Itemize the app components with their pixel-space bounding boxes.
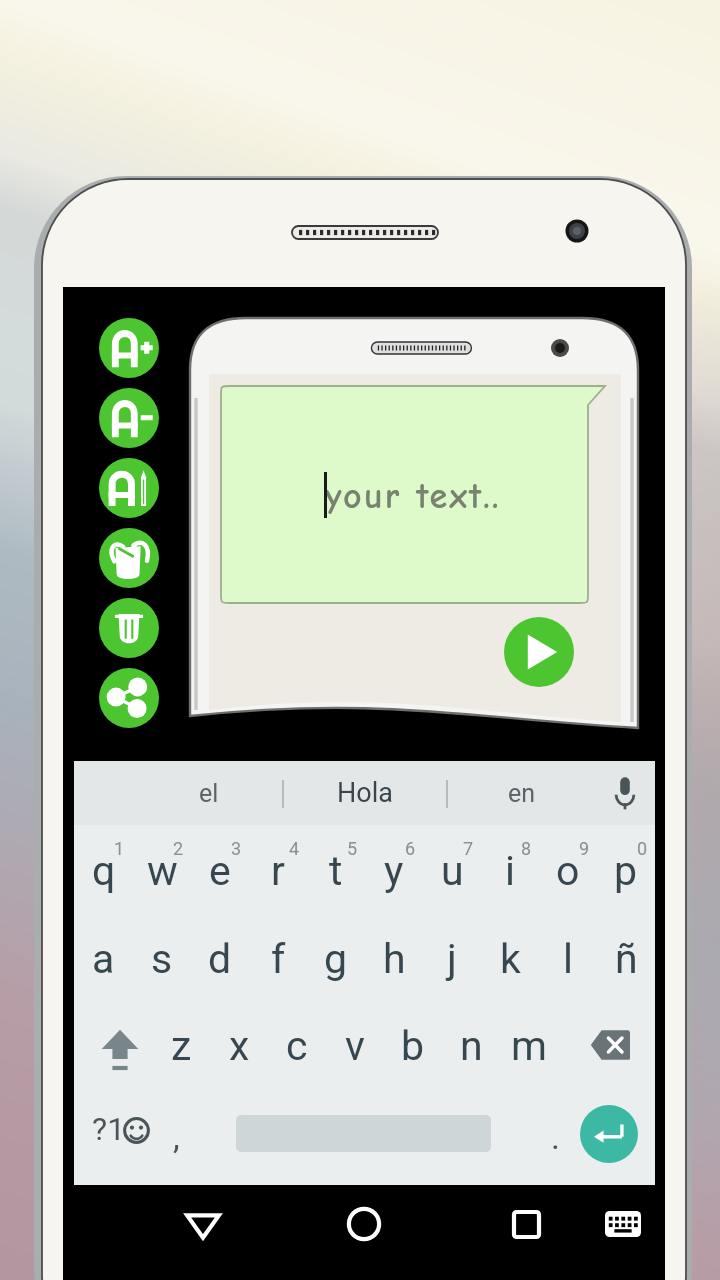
button[interactable]: 7: [423, 825, 481, 914]
button[interactable]: x: [210, 1001, 268, 1088]
button[interactable]: 8: [481, 825, 539, 914]
staticText: i: [505, 847, 515, 895]
staticText: r: [271, 847, 285, 895]
staticText: 0: [637, 838, 648, 859]
staticText: 4: [289, 838, 300, 859]
staticText: l: [563, 935, 573, 983]
button[interactable]: b: [384, 1001, 442, 1088]
button[interactable]: a: [74, 914, 133, 1001]
button[interactable]: Enter: [580, 1105, 638, 1163]
button[interactable]: s: [133, 914, 191, 1001]
button[interactable]: Play: [504, 617, 574, 687]
button[interactable]: Shift: [74, 1001, 152, 1088]
staticText: a: [92, 935, 115, 983]
button[interactable]: g: [307, 914, 365, 1001]
button[interactable]: 4: [249, 825, 307, 914]
staticText: m: [511, 1022, 547, 1070]
staticText: o: [556, 847, 580, 895]
button[interactable]: el: [136, 761, 282, 825]
staticText: 9: [579, 838, 590, 859]
staticText: 8: [521, 838, 532, 859]
button[interactable]: ñ: [597, 914, 655, 1001]
staticText: ?1: [92, 1110, 126, 1148]
staticText: 7: [463, 838, 474, 859]
staticText: en: [508, 779, 536, 808]
staticText: y: [384, 847, 404, 895]
staticText: w: [147, 847, 178, 895]
button[interactable]: Symbols and emoji: [76, 1088, 162, 1185]
button[interactable]: Share: [99, 668, 159, 728]
staticText: d: [208, 935, 232, 983]
button[interactable]: 9: [539, 825, 597, 914]
staticText: 1: [114, 838, 125, 859]
button[interactable]: n: [442, 1001, 500, 1088]
button[interactable]: Home: [334, 1194, 394, 1254]
staticText: 2: [173, 838, 184, 859]
staticText: .: [551, 1117, 560, 1157]
staticText: z: [171, 1022, 192, 1070]
staticText: c: [286, 1022, 308, 1070]
button[interactable]: d: [191, 914, 249, 1001]
button[interactable]: ,: [148, 1088, 204, 1185]
button[interactable]: Recents: [496, 1194, 556, 1254]
button[interactable]: f: [249, 914, 307, 1001]
button[interactable]: k: [481, 914, 539, 1001]
staticText: 6: [405, 838, 416, 859]
button[interactable]: v: [326, 1001, 384, 1088]
button[interactable]: Decrease font size: [99, 388, 159, 448]
button[interactable]: Delete: [99, 598, 159, 658]
button[interactable]: Keyboard: [593, 1194, 653, 1254]
button[interactable]: 3: [191, 825, 249, 914]
button[interactable]: 6: [365, 825, 423, 914]
staticText: Hola: [337, 777, 393, 809]
button[interactable]: Backspace: [558, 1001, 655, 1088]
staticText: u: [441, 847, 464, 895]
staticText: ñ: [615, 935, 638, 983]
button[interactable]: 1: [74, 825, 133, 914]
staticText: k: [500, 935, 521, 983]
staticText: f: [271, 935, 286, 983]
staticText: e: [209, 847, 231, 895]
staticText: s: [151, 935, 173, 983]
button[interactable]: l: [539, 914, 597, 1001]
button[interactable]: .: [525, 1088, 585, 1185]
staticText: g: [324, 935, 348, 983]
button[interactable]: Increase font size: [99, 318, 159, 378]
staticText: j: [447, 935, 457, 983]
staticText: p: [614, 847, 638, 895]
button[interactable]: Voice input: [595, 761, 655, 825]
button[interactable]: z: [152, 1001, 210, 1088]
button[interactable]: Edit text: [99, 458, 159, 518]
button[interactable]: j: [423, 914, 481, 1001]
button[interactable]: Background colour: [99, 528, 159, 588]
staticText: b: [401, 1022, 425, 1070]
staticText: x: [229, 1022, 250, 1070]
staticText: h: [383, 935, 406, 983]
staticText: t: [329, 847, 343, 895]
button[interactable]: h: [365, 914, 423, 1001]
button[interactable]: Back: [173, 1194, 233, 1254]
button[interactable]: m: [500, 1001, 558, 1088]
staticText: el: [199, 779, 219, 808]
staticText: q: [92, 847, 116, 895]
button[interactable]: en: [447, 761, 597, 825]
staticText: v: [345, 1022, 365, 1070]
staticText: your text..: [325, 476, 501, 517]
button[interactable]: Hola: [283, 761, 446, 825]
staticText: ,: [173, 1117, 180, 1157]
staticText: 3: [231, 838, 242, 859]
staticText: n: [460, 1022, 483, 1070]
button[interactable]: 5: [307, 825, 365, 914]
staticText: 5: [347, 838, 358, 859]
button[interactable]: c: [268, 1001, 326, 1088]
button[interactable]: 2: [133, 825, 191, 914]
button[interactable]: 0: [597, 825, 655, 914]
